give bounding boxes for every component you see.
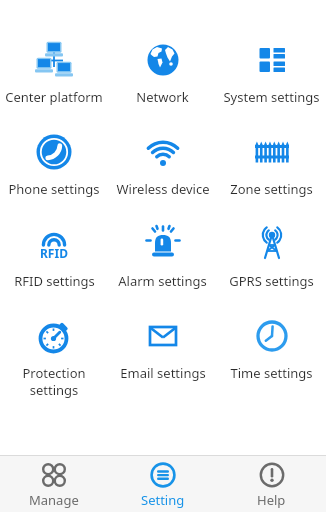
staticText: Email settings — [120, 364, 206, 382]
button[interactable]: RFID — [0, 220, 108, 312]
button[interactable]: Zone settings — [217, 128, 326, 220]
button[interactable]: GPRS settings — [217, 220, 326, 312]
staticText: Alarm settings — [118, 272, 207, 290]
button[interactable]: Setting — [108, 456, 217, 512]
staticText: Help — [257, 491, 286, 509]
button[interactable]: Help — [217, 456, 326, 512]
staticText: RFID settings — [14, 272, 95, 290]
button[interactable]: Email settings — [108, 312, 217, 404]
staticText: RFID — [40, 245, 68, 261]
button[interactable]: Alarm settings — [108, 220, 217, 312]
button[interactable]: Time settings — [217, 312, 326, 404]
staticText: System settings — [223, 88, 320, 106]
button[interactable]: Manage — [0, 456, 108, 512]
staticText: Time settings — [230, 364, 313, 382]
staticText: Center platform — [5, 88, 103, 106]
staticText: Wireless device — [116, 180, 210, 198]
button[interactable]: Phone settings — [0, 128, 108, 220]
staticText: Protection settings — [22, 364, 86, 399]
staticText: GPRS settings — [229, 272, 314, 290]
button[interactable]: Wireless device — [108, 128, 217, 220]
button[interactable]: Network — [108, 36, 217, 128]
button[interactable]: System settings — [217, 36, 326, 128]
staticText: Manage — [29, 491, 79, 509]
staticText: Setting — [141, 491, 185, 509]
staticText: Zone settings — [230, 180, 313, 198]
staticText: Phone settings — [8, 180, 100, 198]
button[interactable]: Center platform — [0, 36, 108, 128]
staticText: Network — [136, 88, 189, 106]
button[interactable]: Protection settings — [0, 312, 108, 404]
